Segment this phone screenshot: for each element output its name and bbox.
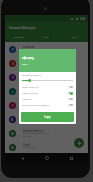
button[interactable]: Notes xyxy=(60,33,88,42)
staticText: Special characters (@#$%^) xyxy=(22,104,67,107)
button[interactable]: Home xyxy=(40,153,54,163)
staticText: Cards xyxy=(43,36,49,39)
button[interactable]: Upper case (A-Z) xyxy=(22,84,74,90)
staticText: T xyxy=(12,75,14,80)
staticText: Password length: 8 xyxy=(22,74,42,77)
staticText: N xyxy=(11,131,14,136)
staticText: Passwords xyxy=(13,36,24,39)
staticText: Notes xyxy=(71,36,78,39)
staticText: S xyxy=(12,61,14,66)
button[interactable]: L xyxy=(5,84,88,98)
button[interactable]: N xyxy=(5,126,88,140)
staticText: john.anderson@gmail.com xyxy=(23,132,50,135)
staticText: john.anderson@gmail.com xyxy=(23,118,50,121)
staticText: john.anderson@gmail.com xyxy=(23,62,50,65)
button[interactable]: Copy xyxy=(21,112,74,122)
staticText: G xyxy=(11,145,14,150)
button[interactable]: B xyxy=(5,112,88,126)
staticText: I xyxy=(12,103,14,108)
staticText: Password Manager xyxy=(9,26,37,30)
staticText: Facebook xyxy=(23,45,35,49)
staticText: Lower case (a-z) xyxy=(22,92,67,95)
button[interactable]: Recent apps xyxy=(64,153,78,163)
staticText: Numbers xyxy=(22,98,67,101)
button[interactable]: Passwords xyxy=(5,33,32,42)
staticText: Upper case (A-Z) xyxy=(22,86,67,89)
button[interactable]: Cards xyxy=(32,33,60,42)
button[interactable]: S xyxy=(5,56,88,70)
button[interactable]: Numbers xyxy=(22,96,74,102)
button[interactable]: T xyxy=(5,70,88,84)
staticText: LinkedIn xyxy=(23,87,34,91)
staticText: Good xyxy=(22,63,28,66)
button[interactable]: I xyxy=(5,98,88,112)
button[interactable]: F xyxy=(5,42,88,56)
button[interactable]: Add password xyxy=(74,138,84,148)
button[interactable]: Lower case (a-z) xyxy=(22,90,74,96)
staticText: john.anderson@gmail.com xyxy=(23,104,50,107)
staticText: Spotify xyxy=(23,59,32,63)
staticText: 02/05/20 xyxy=(23,93,32,96)
staticText: main account xyxy=(23,146,37,149)
staticText: L xyxy=(12,89,14,94)
staticText: B xyxy=(11,117,14,122)
staticText: 12/05/20 xyxy=(23,79,32,82)
staticText: Nubank Android xyxy=(23,129,43,133)
staticText: 3:34 xyxy=(80,17,86,21)
staticText: john.anderson@gmail.com xyxy=(23,48,50,51)
staticText: aljaxpeg xyxy=(22,56,35,60)
button[interactable]: Back xyxy=(15,153,29,163)
staticText: Gmail xyxy=(23,143,31,147)
button[interactable]: Special characters (@#$%^) xyxy=(22,102,74,108)
staticText: 14/04/20 xyxy=(23,135,32,138)
staticText: F xyxy=(12,47,14,52)
staticText: Copy xyxy=(44,115,51,119)
staticText: Twitter xyxy=(23,73,32,77)
staticText: 20/04/20 xyxy=(23,121,32,124)
button[interactable]: G xyxy=(5,140,88,153)
